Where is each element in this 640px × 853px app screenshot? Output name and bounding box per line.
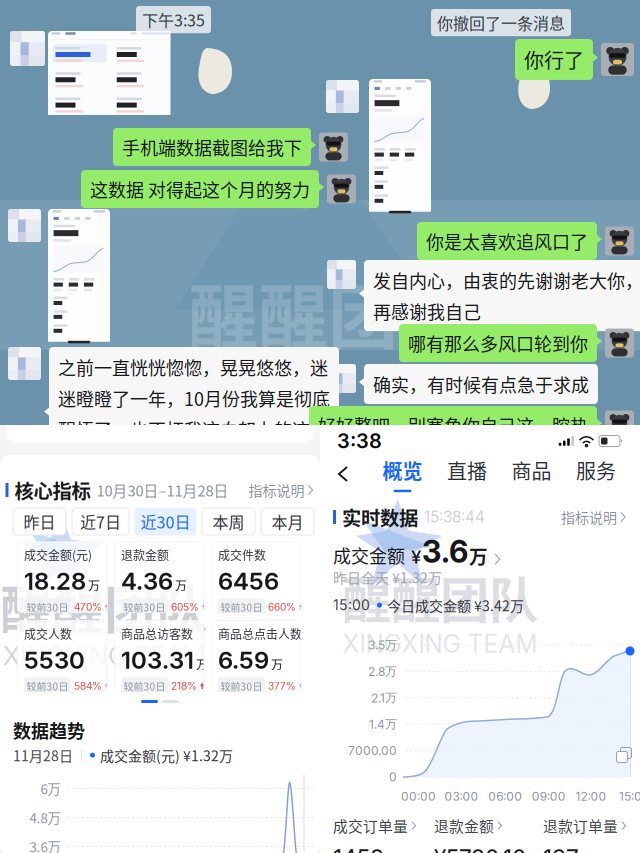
button[interactable]: 概览 bbox=[382, 456, 422, 492]
staticText: 核心指标 bbox=[14, 476, 90, 504]
staticText: 较前30日 bbox=[220, 600, 262, 614]
staticText: 手机端数据截图给我下 bbox=[122, 134, 302, 160]
staticText: 本月 bbox=[271, 510, 303, 533]
staticText: 昨日全天 ¥1.32万 bbox=[333, 567, 442, 587]
button[interactable]: 近30日 bbox=[135, 508, 196, 535]
button[interactable]: 商品总点击人数 bbox=[211, 620, 301, 692]
staticText: 00:00 bbox=[401, 789, 436, 803]
staticText: 万 bbox=[88, 576, 100, 594]
staticText: 醒醒团队 bbox=[188, 262, 468, 363]
staticText: 6万 bbox=[40, 779, 60, 798]
button[interactable]: 指标说明 bbox=[561, 507, 627, 527]
staticText: 11月28日 bbox=[13, 745, 73, 765]
staticText: 3.5万 bbox=[368, 637, 397, 652]
staticText: 1.4万 bbox=[369, 717, 397, 732]
staticText: 实时数据 bbox=[342, 503, 418, 531]
staticText: 15:00 bbox=[333, 597, 370, 614]
staticText: 5530 bbox=[24, 645, 85, 674]
staticText: ¥5780.10 bbox=[434, 844, 526, 853]
staticText: 之前一直恍恍惚惚，晃晃悠悠，迷 bbox=[58, 354, 328, 380]
staticText: 470% bbox=[74, 601, 102, 613]
staticText: 3.6万 bbox=[29, 837, 60, 853]
staticText: 2.8万 bbox=[368, 664, 397, 679]
button[interactable]: 退款金额 bbox=[114, 541, 204, 613]
button[interactable]: 成交金额(元) bbox=[17, 541, 107, 613]
button[interactable]: 成交件数 bbox=[211, 541, 301, 613]
staticText: 12:00 bbox=[575, 789, 606, 803]
staticText: 商品 bbox=[511, 456, 551, 485]
staticText: 06:00 bbox=[488, 789, 522, 803]
staticText: 商品总点击人数 bbox=[218, 625, 302, 642]
staticText: 218% bbox=[171, 680, 197, 692]
staticText: 昨日 bbox=[23, 510, 55, 533]
staticText: 3:38 bbox=[337, 429, 382, 453]
button[interactable]: 成交人数 bbox=[17, 620, 107, 692]
staticText: 本周 bbox=[212, 510, 244, 533]
staticText: 15:00 bbox=[619, 789, 640, 803]
staticText: 377% bbox=[268, 680, 296, 692]
button[interactable]: 昨日 bbox=[13, 508, 66, 535]
staticText: 万 bbox=[196, 655, 208, 673]
button[interactable]: 近7日 bbox=[72, 508, 129, 535]
button[interactable]: 退款订单量 bbox=[543, 815, 627, 853]
staticText: 直播 bbox=[447, 456, 487, 485]
staticText: 发自内心，由衷的先谢谢老大你， bbox=[373, 267, 640, 293]
staticText: 好好整吧，别塞角你自己这一腔热 bbox=[318, 412, 588, 438]
staticText: 确实，有时候有点急于求成 bbox=[373, 371, 589, 397]
staticText: 137 bbox=[543, 844, 579, 853]
button[interactable]: 退款金额 bbox=[434, 815, 526, 853]
staticText: 较前30日 bbox=[123, 600, 165, 614]
staticText: 今日成交金额 ¥3.42万 bbox=[387, 595, 524, 615]
staticText: 6.59 bbox=[218, 645, 269, 674]
staticText: 退款金额 bbox=[121, 546, 169, 563]
staticText: 03:00 bbox=[445, 789, 479, 803]
button[interactable]: 返回 bbox=[332, 459, 358, 489]
button[interactable]: 直播 bbox=[447, 456, 487, 492]
staticText: 这数据 对得起这个月的努力 bbox=[90, 176, 310, 202]
button[interactable]: 本周 bbox=[202, 508, 255, 535]
staticText: 数据趋势 bbox=[13, 717, 85, 743]
staticText: 3.6 bbox=[422, 533, 468, 570]
staticText: 退款金额 bbox=[434, 815, 494, 836]
staticText: 成交金额(元) bbox=[24, 546, 92, 563]
staticText: 605% bbox=[171, 601, 199, 613]
staticText: 近30日 bbox=[140, 510, 190, 533]
staticText: XINGXING TEAM bbox=[342, 629, 537, 659]
staticText: 较前30日 bbox=[123, 679, 165, 693]
button[interactable]: 成交订单量 bbox=[333, 815, 417, 853]
button[interactable]: 指标说明 bbox=[248, 480, 314, 500]
staticText: ¥ bbox=[411, 545, 421, 568]
button[interactable]: 服务 bbox=[576, 456, 616, 492]
staticText: 指标说明 bbox=[248, 480, 304, 500]
staticText: 服务 bbox=[576, 456, 616, 485]
staticText: 较前30日 bbox=[26, 600, 68, 614]
staticText: 万 bbox=[271, 655, 283, 673]
button[interactable]: 成交金额 bbox=[333, 533, 502, 570]
staticText: 醒悟了，也不枉我这白努力的这一 bbox=[58, 416, 328, 442]
staticText: 0 bbox=[389, 770, 397, 784]
staticText: 醒醒团队 bbox=[0, 569, 208, 644]
staticText: 660% bbox=[268, 601, 296, 613]
staticText: 成交件数 bbox=[218, 546, 266, 563]
staticText: XINGXING TEAM bbox=[192, 358, 464, 401]
staticText: 迷瞪瞪了一年，10月份我算是彻底 bbox=[58, 385, 330, 411]
staticText: 退款订单量 bbox=[543, 815, 618, 836]
staticText: 商品总访客数 bbox=[121, 625, 193, 642]
staticText: 你行了 bbox=[524, 45, 584, 74]
button[interactable]: 本月 bbox=[261, 508, 314, 535]
staticText: 较前30日 bbox=[26, 679, 68, 693]
staticText: 哪有那么多风口轮到你 bbox=[408, 330, 588, 356]
staticText: 成交金额(元) ¥1.32万 bbox=[100, 745, 233, 765]
staticText: 4.8万 bbox=[29, 808, 60, 827]
button[interactable]: 商品总访客数 bbox=[114, 620, 204, 692]
staticText: 10月30日–11月28日 bbox=[96, 479, 228, 501]
staticText: 7000.00 bbox=[348, 743, 397, 758]
staticText: 醒醒团队 bbox=[342, 561, 538, 632]
staticText: XINGXING TEAM bbox=[3, 640, 205, 671]
staticText: 万 bbox=[175, 576, 187, 594]
button[interactable]: 商品 bbox=[511, 456, 551, 492]
staticText: 成交订单量 bbox=[333, 815, 408, 836]
staticText: 你是太喜欢追风口了 bbox=[426, 228, 588, 254]
staticText: 成交金额 bbox=[333, 542, 405, 568]
staticText: 你撤回了一条消息 bbox=[437, 11, 565, 34]
